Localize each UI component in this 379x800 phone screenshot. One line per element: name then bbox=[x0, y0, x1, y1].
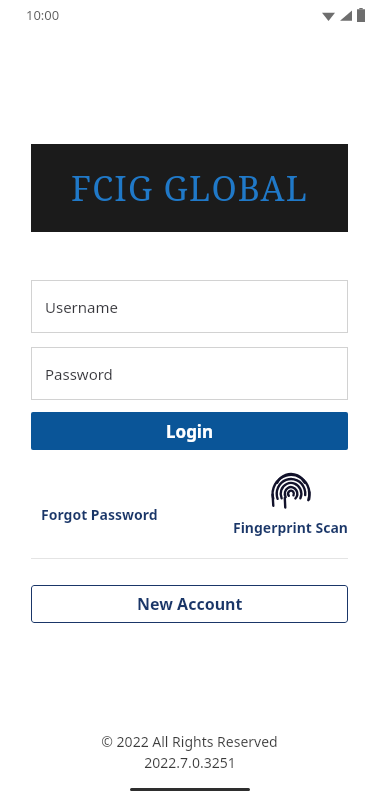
button[interactable]: Login bbox=[31, 412, 348, 450]
staticText: New Account bbox=[137, 593, 243, 615]
other: Fingerprint Scan bbox=[268, 468, 314, 514]
button[interactable]: Forgot Password bbox=[31, 499, 168, 530]
staticText: Login bbox=[166, 420, 214, 443]
button[interactable]: Fingerprint Scan bbox=[233, 468, 348, 537]
staticText: 2022.7.0.3251 bbox=[144, 753, 236, 772]
button[interactable]: Password bbox=[31, 347, 348, 400]
staticText: FCIG GLOBAL bbox=[71, 165, 309, 211]
staticText: Username bbox=[45, 297, 118, 317]
staticText: Forgot Password bbox=[41, 505, 158, 524]
button[interactable]: New Account bbox=[31, 585, 348, 623]
staticText: © 2022 All Rights Reserved bbox=[101, 732, 278, 751]
button[interactable]: Username bbox=[31, 280, 348, 333]
staticText: Password bbox=[45, 364, 113, 384]
staticText: 10:00 bbox=[26, 6, 60, 24]
staticText: Fingerprint Scan bbox=[233, 518, 348, 537]
